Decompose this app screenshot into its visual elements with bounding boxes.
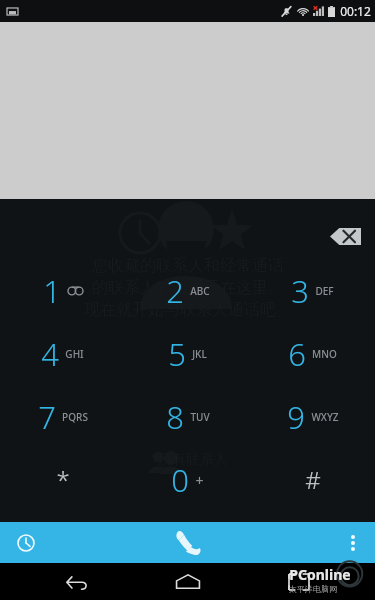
button[interactable]: * — [0, 448, 125, 511]
staticText: 1 — [43, 270, 61, 312]
staticText: ABC — [190, 284, 210, 298]
button[interactable]: 0 — [125, 448, 250, 511]
staticText: * — [56, 463, 70, 496]
staticText: # — [305, 463, 321, 496]
staticText: 太平洋电脑网 — [289, 584, 337, 594]
button[interactable]: 5 — [125, 322, 250, 385]
button[interactable]: Call — [144, 522, 232, 563]
button[interactable]: 7 — [0, 385, 125, 448]
staticText: DEF — [315, 284, 334, 298]
button[interactable]: Back — [41, 563, 111, 600]
staticText: GHI — [65, 347, 84, 361]
staticText: 的联系人将会显示在这里。 — [92, 278, 284, 298]
staticText: 0 — [171, 459, 189, 501]
staticText: PQRS — [62, 410, 88, 424]
button[interactable]: 8 — [125, 385, 250, 448]
staticText: 9 — [287, 396, 305, 438]
staticText: 4 — [41, 333, 59, 375]
button[interactable]: 2 — [125, 259, 250, 322]
button[interactable]: 9 — [250, 385, 375, 448]
staticText: 8 — [166, 396, 184, 438]
staticText: PConline — [289, 565, 351, 584]
button[interactable]: Home — [153, 563, 223, 600]
button[interactable]: 3 — [250, 259, 375, 322]
staticText: WXYZ — [311, 410, 339, 424]
button[interactable]: Recents — [264, 563, 334, 600]
staticText: JKL — [192, 347, 207, 361]
button[interactable]: Call history — [0, 522, 52, 563]
staticText: 2 — [166, 270, 184, 312]
staticText: TUV — [190, 410, 210, 424]
staticText: 00:12 — [340, 3, 371, 19]
button[interactable]: More options — [331, 522, 375, 563]
staticText: 现在就开始与联系人通话吧。 — [84, 300, 292, 320]
staticText: MNO — [312, 347, 337, 361]
button[interactable]: Backspace — [323, 221, 367, 251]
staticText: 3 — [291, 270, 309, 312]
button[interactable]: # — [250, 448, 375, 511]
staticText: 5 — [168, 333, 186, 375]
staticText: + — [195, 471, 204, 490]
button[interactable]: 4 — [0, 322, 125, 385]
button[interactable]: 1 — [0, 259, 125, 322]
staticText: 7 — [38, 396, 56, 438]
button[interactable]: 6 — [250, 322, 375, 385]
staticText: 6 — [288, 333, 306, 375]
